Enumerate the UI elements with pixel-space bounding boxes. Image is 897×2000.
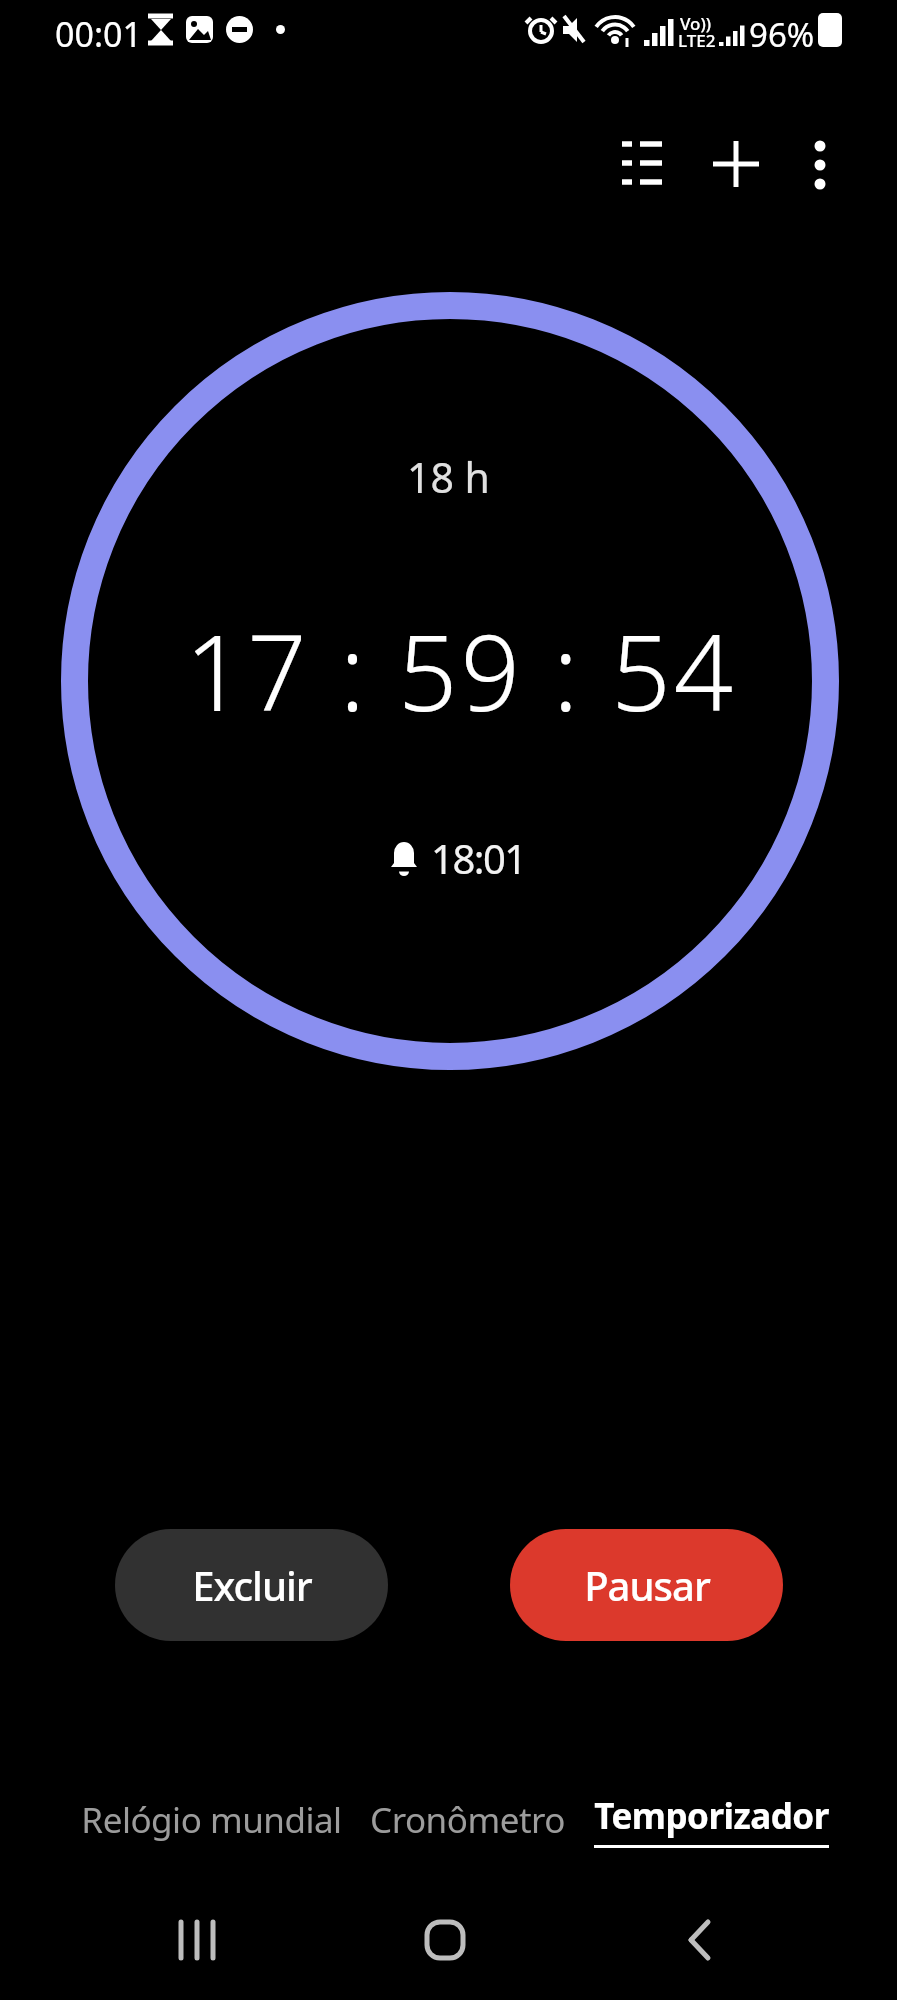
staticText: 18:01 — [431, 831, 526, 885]
staticText: 96% — [749, 12, 815, 57]
button[interactable] — [790, 134, 850, 194]
staticText: Vo)) — [680, 12, 712, 35]
button[interactable] — [706, 134, 766, 194]
staticText: Excluir — [192, 1558, 312, 1612]
button[interactable] — [410, 1905, 480, 1975]
button[interactable]: Excluir — [115, 1529, 388, 1641]
staticText: Pausar — [584, 1558, 710, 1612]
button[interactable] — [665, 1905, 735, 1975]
staticText: Relógio mundial — [81, 1796, 342, 1844]
button[interactable]: Cronômetro — [317, 1788, 617, 1852]
staticText: 17 : 59 : 54 — [12, 600, 897, 742]
staticText: 00:01 — [55, 11, 142, 57]
staticText: Temporizador — [594, 1792, 829, 1840]
button[interactable] — [611, 133, 671, 193]
button[interactable] — [162, 1905, 232, 1975]
staticText: Cronômetro — [370, 1796, 565, 1844]
staticText: LTE2 — [678, 29, 716, 52]
staticText: 18 h — [0, 449, 897, 505]
button[interactable]: Temporizador — [561, 1785, 861, 1855]
button[interactable]: Pausar — [510, 1529, 783, 1641]
button[interactable]: Relógio mundial — [61, 1788, 361, 1852]
